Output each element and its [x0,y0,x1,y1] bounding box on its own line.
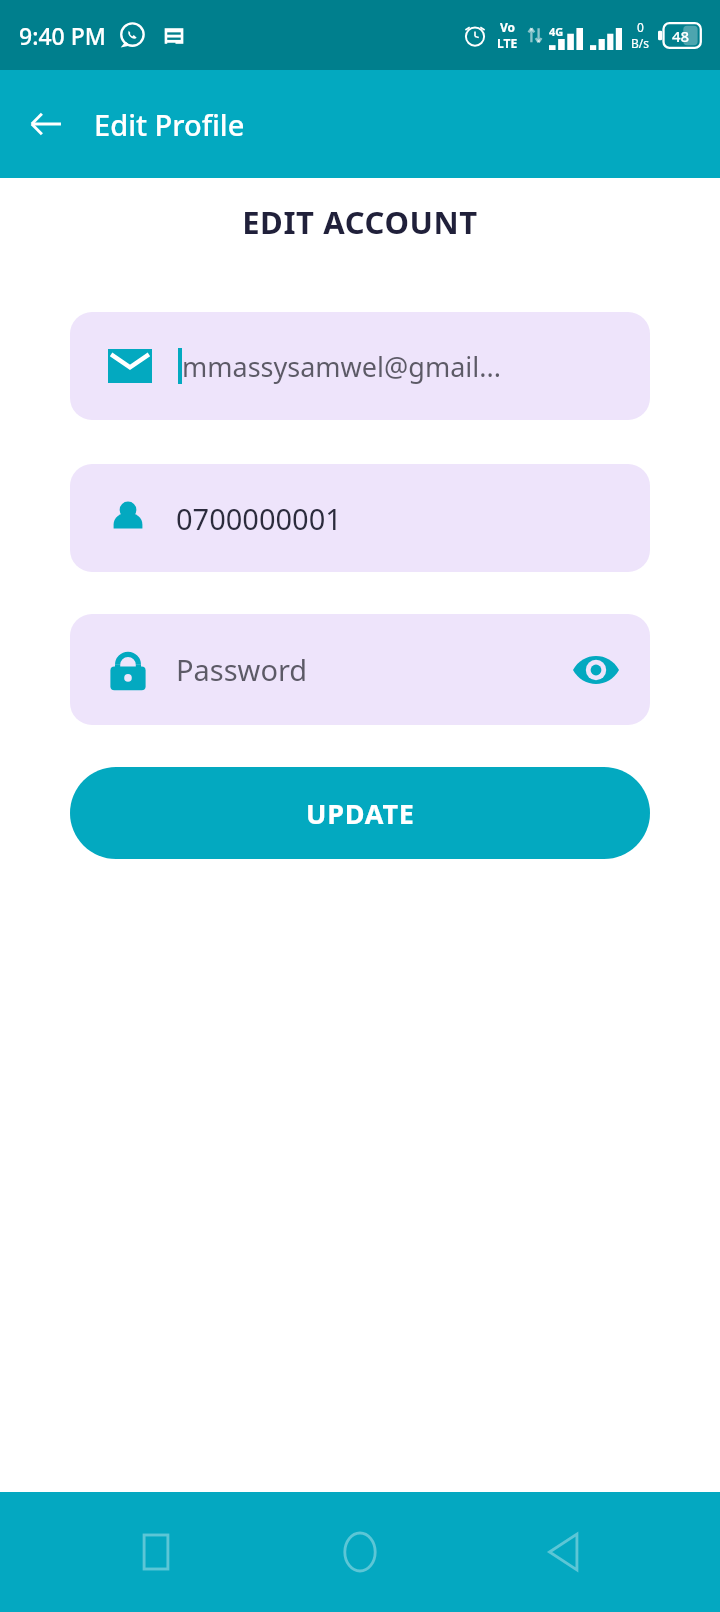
button[interactable]: Back [14,92,78,156]
button[interactable]: mmassysamwel@gmail... [70,312,650,420]
staticText: 0700000001 [176,499,342,538]
staticText: 48 [672,26,690,46]
button[interactable]: Back [516,1504,612,1600]
button[interactable]: Show password [568,642,624,698]
staticText: UPDATE [306,795,415,832]
button[interactable]: Password [70,614,650,725]
button[interactable]: UPDATE [70,767,650,859]
staticText: 9:40 PM [19,20,106,51]
button[interactable]: 0700000001 [70,464,650,572]
staticText: Vo [500,19,516,35]
staticText: Edit Profile [94,105,245,144]
staticText: B/s [631,35,650,51]
staticText: 0 [637,19,644,35]
staticText: Password [176,650,308,689]
button[interactable]: Recent apps [108,1504,204,1600]
staticText: mmassysamwel@gmail... [182,348,501,385]
staticText: EDIT ACCOUNT [0,201,720,243]
staticText: 4G [549,24,564,39]
staticText: LTE [497,35,518,51]
button[interactable]: Home [312,1504,408,1600]
